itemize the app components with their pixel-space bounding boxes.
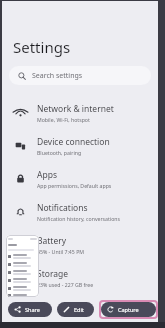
button[interactable]: Notifications [2, 195, 158, 228]
button[interactable]: Apps [2, 162, 158, 195]
staticText: Battery [37, 235, 67, 247]
button[interactable]: Edit [57, 302, 94, 317]
staticText: Storage [37, 268, 69, 280]
button[interactable]: Capture more [101, 302, 156, 317]
staticText: Network & internet [37, 103, 114, 115]
staticText: Edit [74, 306, 84, 313]
staticText: Bluetooth, pairing [37, 149, 82, 156]
staticText: Notifications [37, 202, 88, 214]
staticText: Apps [37, 169, 57, 181]
staticText: Share [25, 306, 40, 313]
button[interactable]: Battery [2, 228, 158, 261]
button[interactable]: Network & internet [2, 96, 158, 129]
staticText: 23% used - 227 GB free [37, 281, 94, 288]
staticText: Device connection [37, 136, 110, 148]
button[interactable]: Screenshot preview [6, 235, 39, 297]
staticText: App permissions, Default apps [37, 182, 112, 189]
staticText: 45% - Until 7:45 PM [37, 248, 84, 255]
staticText: Mobile, Wi-Fi, hotspot [37, 116, 90, 123]
staticText: Capture more [118, 306, 151, 313]
staticText: Settings [13, 37, 71, 57]
button[interactable]: Search settings [9, 66, 151, 85]
button[interactable]: Share [8, 302, 52, 317]
staticText: Search settings [32, 71, 83, 81]
button[interactable]: Storage [2, 261, 158, 294]
button[interactable]: Device connection [2, 129, 158, 162]
staticText: Notification history, conversations [37, 215, 121, 222]
